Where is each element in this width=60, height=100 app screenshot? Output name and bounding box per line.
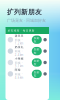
staticText: 好友推荐 · 每日更新 xyxy=(8,29,35,32)
staticText: 同城 · 2.4km xyxy=(15,50,23,57)
staticText: 同城 · 4.6km xyxy=(15,72,23,79)
staticText: 同城 · 1.2km xyxy=(15,38,23,45)
staticText: 加好友 xyxy=(34,59,40,66)
button[interactable]: 奶茶丸 xyxy=(5,45,49,57)
staticText: 小辣椒 xyxy=(15,57,24,60)
staticText: 加好友 xyxy=(34,36,40,43)
staticText: 扩列新朋友 xyxy=(7,8,42,16)
staticText: 广场宠友 · 同城加好友 xyxy=(7,18,46,23)
staticText: 阿柴 xyxy=(15,68,21,72)
staticText: 甜豆豆 xyxy=(15,34,24,37)
button[interactable]: 阿柴 xyxy=(5,68,49,80)
staticText: 奶茶丸 xyxy=(15,45,24,49)
button[interactable]: 甜豆豆 xyxy=(5,34,49,45)
staticText: 加好友 xyxy=(34,71,40,77)
button[interactable]: 小辣椒 xyxy=(5,57,49,68)
staticText: 加好友 xyxy=(34,48,40,54)
button[interactable]: 好友推荐 · 每日更新 xyxy=(5,27,49,34)
staticText: 同城 · 3.1km xyxy=(15,61,23,68)
